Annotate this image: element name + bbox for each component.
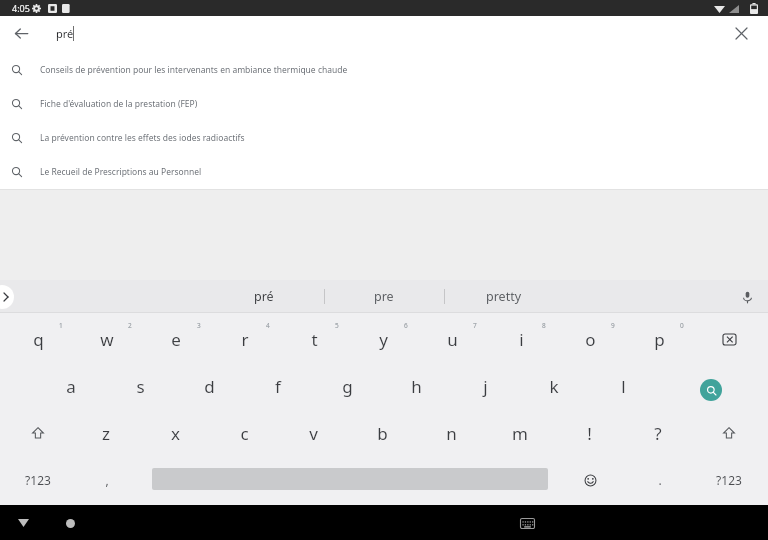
staticText: s (136, 375, 145, 398)
button[interactable]: a (37, 363, 105, 409)
button[interactable]: pre (329, 280, 439, 313)
staticText: j (483, 375, 488, 398)
button[interactable]: f (244, 363, 312, 409)
button[interactable]: x (141, 410, 209, 456)
button[interactable]: k (520, 363, 588, 409)
button[interactable]: Conseils de prévention pour les interven… (0, 53, 768, 87)
staticText: 7 (473, 321, 477, 330)
button[interactable]: o (556, 316, 624, 362)
staticText: p (654, 328, 665, 351)
button[interactable]: Home (54, 508, 86, 538)
button[interactable]: c (210, 410, 278, 456)
button[interactable]: ?123 (696, 456, 762, 504)
button[interactable]: b (348, 410, 416, 456)
staticText: 3 (197, 321, 201, 330)
staticText: Fiche d'évaluation de la prestation (FEP… (40, 98, 198, 110)
staticText: z (102, 422, 110, 445)
button[interactable]: t (280, 316, 348, 362)
staticText: Le Recueil de Prescriptions au Personnel (40, 166, 202, 178)
button[interactable]: Back (9, 21, 33, 45)
button[interactable]: e (142, 316, 210, 362)
button[interactable]: z (72, 410, 140, 456)
staticText: u (447, 328, 458, 351)
staticText: x (171, 422, 180, 445)
staticText: 9 (611, 321, 615, 330)
staticText: ?123 (25, 472, 51, 488)
button[interactable]: d (175, 363, 243, 409)
staticText: ?123 (716, 472, 742, 488)
staticText: 1 (59, 321, 63, 330)
staticText: 5 (335, 321, 339, 330)
staticText: 0 (680, 321, 684, 330)
button[interactable]: g (313, 363, 381, 409)
staticText: b (377, 422, 388, 445)
button[interactable]: v (279, 410, 347, 456)
staticText: t (311, 328, 318, 351)
staticText: r (241, 328, 249, 351)
button[interactable]: p (625, 316, 693, 362)
staticText: c (240, 422, 249, 445)
button[interactable]: La prévention contre les effets des iode… (0, 121, 768, 155)
button[interactable]: j (451, 363, 519, 409)
button[interactable]: pretty (449, 280, 559, 313)
button[interactable]: Search (700, 379, 722, 401)
button[interactable]: pré (209, 280, 319, 313)
button[interactable]: m (486, 410, 554, 456)
staticText: v (309, 422, 318, 445)
staticText: , (105, 472, 109, 488)
button[interactable]: l (589, 363, 657, 409)
button[interactable]: i (487, 316, 555, 362)
button[interactable]: w (73, 316, 141, 362)
staticText: La prévention contre les effets des iode… (40, 132, 245, 144)
staticText: w (100, 328, 114, 351)
button[interactable]: , (74, 456, 140, 504)
button[interactable]: Back (5, 508, 41, 538)
staticText: y (379, 328, 388, 351)
button[interactable]: r (211, 316, 279, 362)
button[interactable]: ? (624, 410, 692, 456)
button[interactable]: n (417, 410, 485, 456)
staticText: pre (374, 288, 394, 305)
staticText: g (342, 375, 353, 398)
staticText: k (549, 375, 559, 398)
staticText: 6 (404, 321, 408, 330)
button[interactable]: Backspace (697, 318, 761, 360)
button[interactable]: Voice input (735, 285, 759, 309)
staticText: f (275, 375, 281, 398)
staticText: o (585, 328, 596, 351)
button[interactable]: u (418, 316, 486, 362)
staticText: pré (254, 288, 274, 305)
button[interactable]: Clear query (729, 21, 753, 45)
button[interactable]: More suggestions (0, 285, 14, 309)
button[interactable]: Le Recueil de Prescriptions au Personnel (0, 155, 768, 189)
button[interactable]: ?123 (5, 456, 71, 504)
button[interactable]: s (106, 363, 174, 409)
staticText: l (621, 375, 626, 398)
staticText: d (204, 375, 215, 398)
staticText: 4 (266, 321, 270, 330)
staticText: pretty (486, 288, 522, 305)
button[interactable]: Emoji (566, 459, 614, 501)
staticText: Conseils de prévention pour les interven… (40, 64, 348, 76)
button[interactable]: Shift (8, 412, 68, 454)
button[interactable]: ! (555, 410, 623, 456)
staticText: 2 (128, 321, 132, 330)
staticText: e (171, 328, 181, 351)
staticText: q (33, 328, 44, 351)
staticText: ? (654, 422, 662, 445)
button[interactable]: y (349, 316, 417, 362)
button[interactable]: h (382, 363, 450, 409)
staticText: 8 (542, 321, 546, 330)
staticText: 4:05 (12, 2, 30, 14)
button[interactable]: q (4, 316, 72, 362)
staticText: h (411, 375, 422, 398)
button[interactable]: Keyboard layout (511, 508, 543, 538)
button[interactable]: pré (48, 18, 708, 48)
staticText: a (66, 375, 76, 398)
staticText: . (658, 472, 662, 488)
button[interactable]: Fiche d'évaluation de la prestation (FEP… (0, 87, 768, 121)
button[interactable]: Shift (699, 412, 759, 454)
staticText: n (446, 422, 457, 445)
